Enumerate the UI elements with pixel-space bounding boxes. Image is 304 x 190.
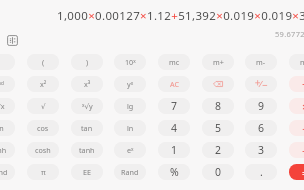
staticText: x² bbox=[40, 79, 47, 89]
staticText: 3 bbox=[258, 143, 265, 157]
button[interactable]: ( bbox=[27, 54, 59, 70]
button[interactable]: Delete bbox=[202, 76, 234, 92]
button[interactable]: mc bbox=[158, 54, 190, 70]
button[interactable]: 7 bbox=[158, 98, 190, 114]
button[interactable]: tan bbox=[71, 120, 103, 136]
button[interactable]: sin bbox=[0, 120, 15, 136]
button[interactable]: Rand bbox=[0, 164, 15, 180]
button[interactable]: Rand bbox=[114, 164, 146, 180]
button[interactable]: ) bbox=[71, 54, 103, 70]
staticText: cos bbox=[37, 123, 49, 133]
button[interactable]: Plus minus bbox=[245, 76, 277, 92]
button[interactable]: yˣ bbox=[114, 76, 146, 92]
staticText: 6 bbox=[258, 121, 265, 135]
button[interactable]: m+ bbox=[202, 54, 234, 70]
staticText: eˣ bbox=[127, 145, 134, 155]
staticText: 2ⁿᵈ bbox=[0, 79, 4, 89]
button[interactable]: × bbox=[289, 98, 304, 114]
button[interactable]: % bbox=[158, 164, 190, 180]
staticText: AC bbox=[170, 79, 179, 89]
button[interactable]: + bbox=[289, 142, 304, 158]
staticText: 0 bbox=[215, 165, 222, 179]
staticText: ( bbox=[42, 57, 45, 67]
staticText: tan bbox=[81, 123, 93, 133]
staticText: 1 bbox=[171, 143, 178, 157]
staticText: cosh bbox=[35, 145, 51, 155]
staticText: 5 bbox=[215, 121, 222, 135]
button[interactable]: 4 bbox=[158, 120, 190, 136]
staticText: ÷ bbox=[302, 77, 304, 92]
staticText: % bbox=[170, 165, 179, 179]
staticText: mc bbox=[169, 57, 180, 67]
button[interactable]: 2 bbox=[202, 142, 234, 158]
staticText: Rand bbox=[0, 167, 8, 177]
staticText: m- bbox=[256, 57, 266, 67]
staticText: π bbox=[41, 167, 46, 177]
button[interactable]: 0 bbox=[202, 164, 234, 180]
button[interactable]: lg bbox=[114, 98, 146, 114]
button[interactable]: . bbox=[245, 164, 277, 180]
button[interactable]: 9 bbox=[245, 98, 277, 114]
button[interactable]: 8 bbox=[202, 98, 234, 114]
staticText: ln bbox=[127, 123, 134, 133]
button[interactable]: = bbox=[289, 164, 304, 180]
button[interactable]: m- bbox=[245, 54, 277, 70]
button[interactable]: π bbox=[27, 164, 59, 180]
button[interactable]: 5 bbox=[202, 120, 234, 136]
staticText: Rand bbox=[121, 167, 139, 177]
staticText: mr bbox=[300, 57, 304, 67]
button[interactable]: eˣ bbox=[114, 142, 146, 158]
staticText: 59.6772… bbox=[275, 29, 304, 39]
button[interactable]: x³ bbox=[71, 76, 103, 92]
button[interactable]: 1/x bbox=[0, 98, 15, 114]
staticText: ˣ√y bbox=[82, 101, 93, 111]
staticText: √ bbox=[41, 102, 46, 110]
staticText: 1/x bbox=[0, 101, 5, 111]
staticText: . bbox=[260, 165, 263, 179]
button[interactable]: − bbox=[289, 120, 304, 136]
button[interactable]: 6 bbox=[245, 120, 277, 136]
button[interactable]: 2ⁿᵈ bbox=[0, 76, 15, 92]
button[interactable]: sinh bbox=[0, 142, 15, 158]
button[interactable]: mr bbox=[289, 54, 304, 70]
button[interactable]: 3 bbox=[245, 142, 277, 158]
button[interactable]: √ bbox=[27, 98, 59, 114]
staticText: 2 bbox=[215, 143, 222, 157]
staticText: 8 bbox=[215, 99, 222, 113]
staticText: sin bbox=[0, 123, 4, 133]
button[interactable]: EE bbox=[71, 164, 103, 180]
button[interactable]: AC bbox=[158, 76, 190, 92]
button[interactable]: 10ˣ bbox=[114, 54, 146, 70]
staticText: ) bbox=[86, 57, 89, 67]
staticText: 7 bbox=[171, 99, 178, 113]
staticText: + bbox=[302, 143, 304, 158]
button[interactable]: ˣ√y bbox=[71, 98, 103, 114]
button[interactable]: x² bbox=[27, 76, 59, 92]
staticText: yˣ bbox=[127, 79, 134, 89]
staticText: tanh bbox=[79, 145, 95, 155]
button[interactable]: cos bbox=[27, 120, 59, 136]
staticText: × bbox=[302, 99, 304, 114]
staticText: − bbox=[302, 121, 304, 136]
staticText: 1,000×0.00127×1.12+51,392×0.019×0.019×3. bbox=[57, 8, 304, 24]
staticText: 9 bbox=[258, 99, 265, 113]
button[interactable]: tanh bbox=[71, 142, 103, 158]
staticText: x³ bbox=[84, 79, 91, 89]
button[interactable]: ÷ bbox=[289, 76, 304, 92]
staticText: 4 bbox=[171, 121, 178, 135]
button[interactable]: Scientific calculator bbox=[7, 35, 18, 46]
staticText: 10ˣ bbox=[125, 57, 136, 67]
button[interactable]: cosh bbox=[27, 142, 59, 158]
staticText: lg bbox=[127, 101, 134, 111]
button[interactable]: 1 bbox=[158, 142, 190, 158]
staticText: sinh bbox=[0, 145, 7, 155]
staticText: = bbox=[302, 165, 304, 180]
staticText: m+ bbox=[213, 57, 224, 67]
button[interactable]: ln bbox=[114, 120, 146, 136]
staticText: EE bbox=[83, 167, 91, 177]
